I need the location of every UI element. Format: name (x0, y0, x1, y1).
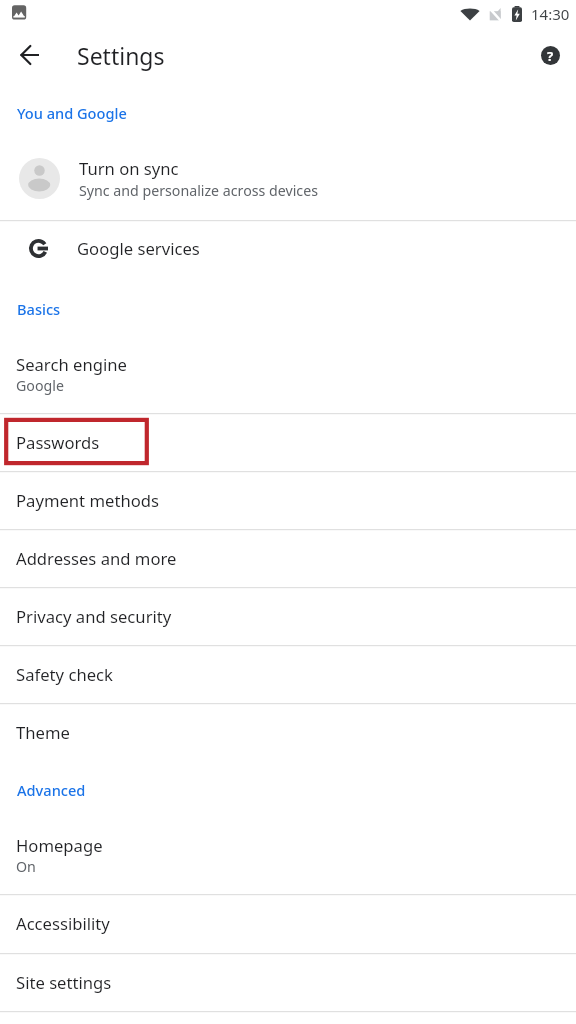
staticText: Advanced (17, 780, 86, 800)
button[interactable]: Accessibility (0, 894, 576, 952)
button[interactable]: Basics (0, 294, 576, 324)
staticText: Passwords (16, 431, 100, 454)
staticText: Theme (16, 721, 70, 744)
staticText: Google (16, 376, 64, 395)
staticText: Safety check (16, 663, 113, 686)
staticText: Privacy and security (16, 605, 172, 628)
button[interactable]: Homepage (0, 824, 576, 886)
staticText: Accessibility (16, 912, 110, 935)
staticText: You and Google (17, 103, 127, 123)
button[interactable]: Theme (0, 703, 576, 761)
staticText: Addresses and more (16, 547, 177, 570)
staticText: Turn on sync (79, 157, 179, 180)
staticText: Search engine (16, 353, 127, 376)
staticText: Sync and personalize across devices (79, 181, 318, 200)
staticText: Payment methods (16, 489, 159, 512)
button[interactable]: Site settings (0, 953, 576, 1011)
button[interactable]: Privacy and security (0, 587, 576, 645)
staticText: On (16, 857, 36, 876)
button[interactable]: Safety check (0, 645, 576, 703)
staticText: Settings (77, 40, 165, 71)
button[interactable]: You and Google (0, 98, 576, 128)
button[interactable]: Search engine (0, 342, 576, 405)
button[interactable]: Google services (0, 220, 576, 277)
staticText: Homepage (16, 834, 103, 857)
button[interactable]: Back (7, 32, 53, 78)
button[interactable]: Payment methods (0, 471, 576, 529)
button[interactable]: Addresses and more (0, 529, 576, 587)
button[interactable]: Passwords (0, 413, 576, 471)
staticText: Site settings (16, 971, 112, 994)
staticText: ? (547, 47, 554, 65)
button[interactable]: Advanced (0, 775, 576, 805)
button[interactable]: Help (529, 34, 572, 77)
button[interactable]: Turn on sync (0, 138, 576, 218)
staticText: Basics (17, 299, 61, 319)
staticText: 14:30 (531, 4, 570, 24)
staticText: Google services (77, 237, 200, 260)
